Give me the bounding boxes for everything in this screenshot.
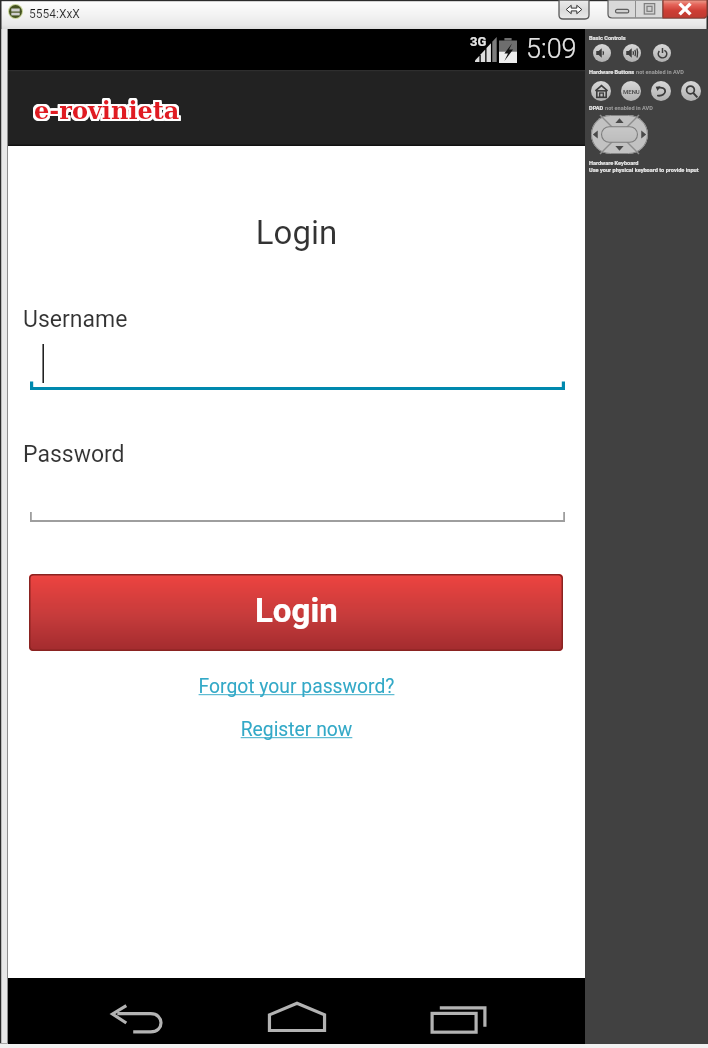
button[interactable]: Search	[681, 81, 701, 101]
staticText: DPAD	[589, 105, 605, 112]
staticText: e-rovinieta	[32, 98, 178, 122]
staticText: not enabled in AVD	[636, 69, 684, 76]
button[interactable]: Login	[29, 574, 563, 651]
staticText: e-rovinieta	[34, 98, 180, 122]
button[interactable]: Volume down	[593, 44, 611, 62]
button[interactable]: Minimize	[608, 0, 636, 18]
button[interactable]: Recent apps	[416, 997, 500, 1041]
button[interactable]: Power	[653, 44, 671, 62]
button[interactable]: Resize window	[559, 0, 589, 19]
button[interactable]: e-rovinieta	[34, 96, 186, 120]
staticText: not enabled in AVD	[605, 105, 653, 112]
staticText: Username	[23, 306, 128, 333]
button[interactable]: Back	[651, 81, 671, 101]
staticText: Use your physical keyboard to provide in…	[589, 167, 699, 174]
staticText: e-rovinieta	[34, 94, 180, 118]
staticText: e-rovinieta	[36, 97, 182, 121]
staticText: e-rovinieta	[35, 94, 181, 118]
button[interactable]: Forgot your password?	[8, 675, 585, 698]
button[interactable]: Home	[591, 81, 611, 101]
staticText: Password	[23, 441, 125, 468]
button[interactable]: Volume up	[623, 44, 641, 62]
button[interactable]: Back	[96, 997, 180, 1041]
button[interactable]: Home	[255, 995, 339, 1039]
button[interactable]: Close	[663, 0, 707, 18]
staticText: e-rovinieta	[36, 95, 182, 119]
staticText: e-rovinieta	[36, 96, 182, 120]
staticText: e-rovinieta	[34, 96, 180, 120]
button[interactable]: Register now	[8, 718, 585, 741]
staticText: 5:09	[526, 33, 577, 65]
staticText: Hardware Keyboard	[589, 160, 639, 167]
staticText: Login	[255, 591, 338, 630]
staticText: e-rovinieta	[32, 95, 178, 119]
staticText: MENU	[623, 88, 640, 95]
button[interactable]: Password field	[30, 469, 565, 527]
button[interactable]: Username field	[30, 329, 565, 393]
staticText: e-rovinieta	[33, 98, 179, 122]
button[interactable]: Maximize	[636, 0, 663, 18]
staticText: 3G	[470, 34, 487, 49]
staticText: e-rovinieta	[35, 98, 181, 122]
staticText: e-rovinieta	[32, 97, 178, 121]
staticText: Login	[8, 213, 585, 252]
button[interactable]: DPAD	[591, 115, 648, 154]
staticText: e-rovinieta	[32, 96, 178, 120]
button[interactable]: Menu	[621, 81, 641, 101]
staticText: e-rovinieta	[36, 98, 182, 122]
staticText: e-rovinieta	[33, 94, 179, 118]
staticText: e-rovinieta	[36, 94, 182, 118]
staticText: Hardware Buttons	[589, 69, 636, 76]
staticText: e-rovinieta	[32, 94, 178, 118]
staticText: 5554:XxX	[29, 7, 80, 21]
staticText: Basic Controls	[589, 35, 626, 42]
